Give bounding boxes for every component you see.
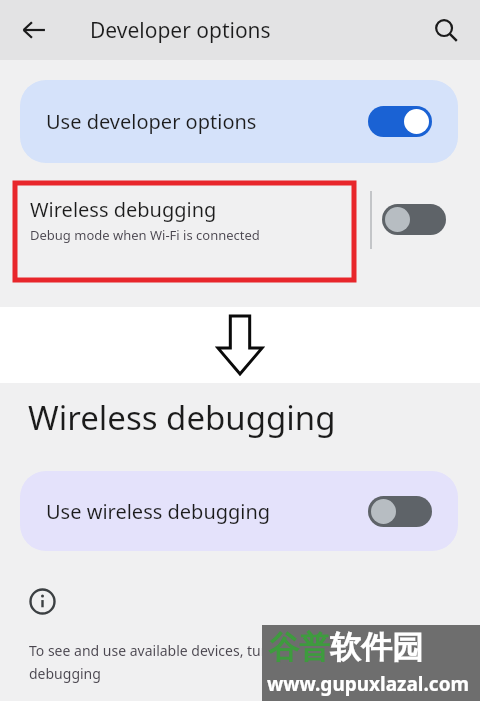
button[interactable]: Use wireless debugging	[20, 471, 458, 551]
staticText: Debug mode when Wi-Fi is connected	[30, 226, 260, 244]
button[interactable]: Wireless debugging toggle	[372, 204, 456, 235]
staticText: To see and use available devices, turn o…	[29, 641, 353, 660]
staticText: Developer options	[90, 16, 271, 45]
staticText: 谷普	[268, 628, 330, 667]
button[interactable]: Use developer options	[20, 80, 458, 163]
staticText: Wireless debugging	[30, 196, 217, 223]
staticText: 软件园	[330, 628, 423, 667]
staticText: debugging	[29, 664, 101, 683]
staticText: Wireless debugging	[28, 395, 336, 440]
button[interactable]: Back	[10, 6, 58, 54]
staticText: Use developer options	[46, 108, 368, 135]
staticText: www.gupuxlazal.com	[267, 671, 470, 697]
button[interactable]: Toggle off	[382, 204, 446, 235]
button[interactable]: Wireless debugging	[16, 177, 456, 262]
staticText: Use wireless debugging	[46, 498, 368, 525]
button[interactable]: Toggle on	[368, 106, 432, 137]
button[interactable]: Toggle off	[368, 496, 432, 527]
button[interactable]: Search	[422, 6, 470, 54]
